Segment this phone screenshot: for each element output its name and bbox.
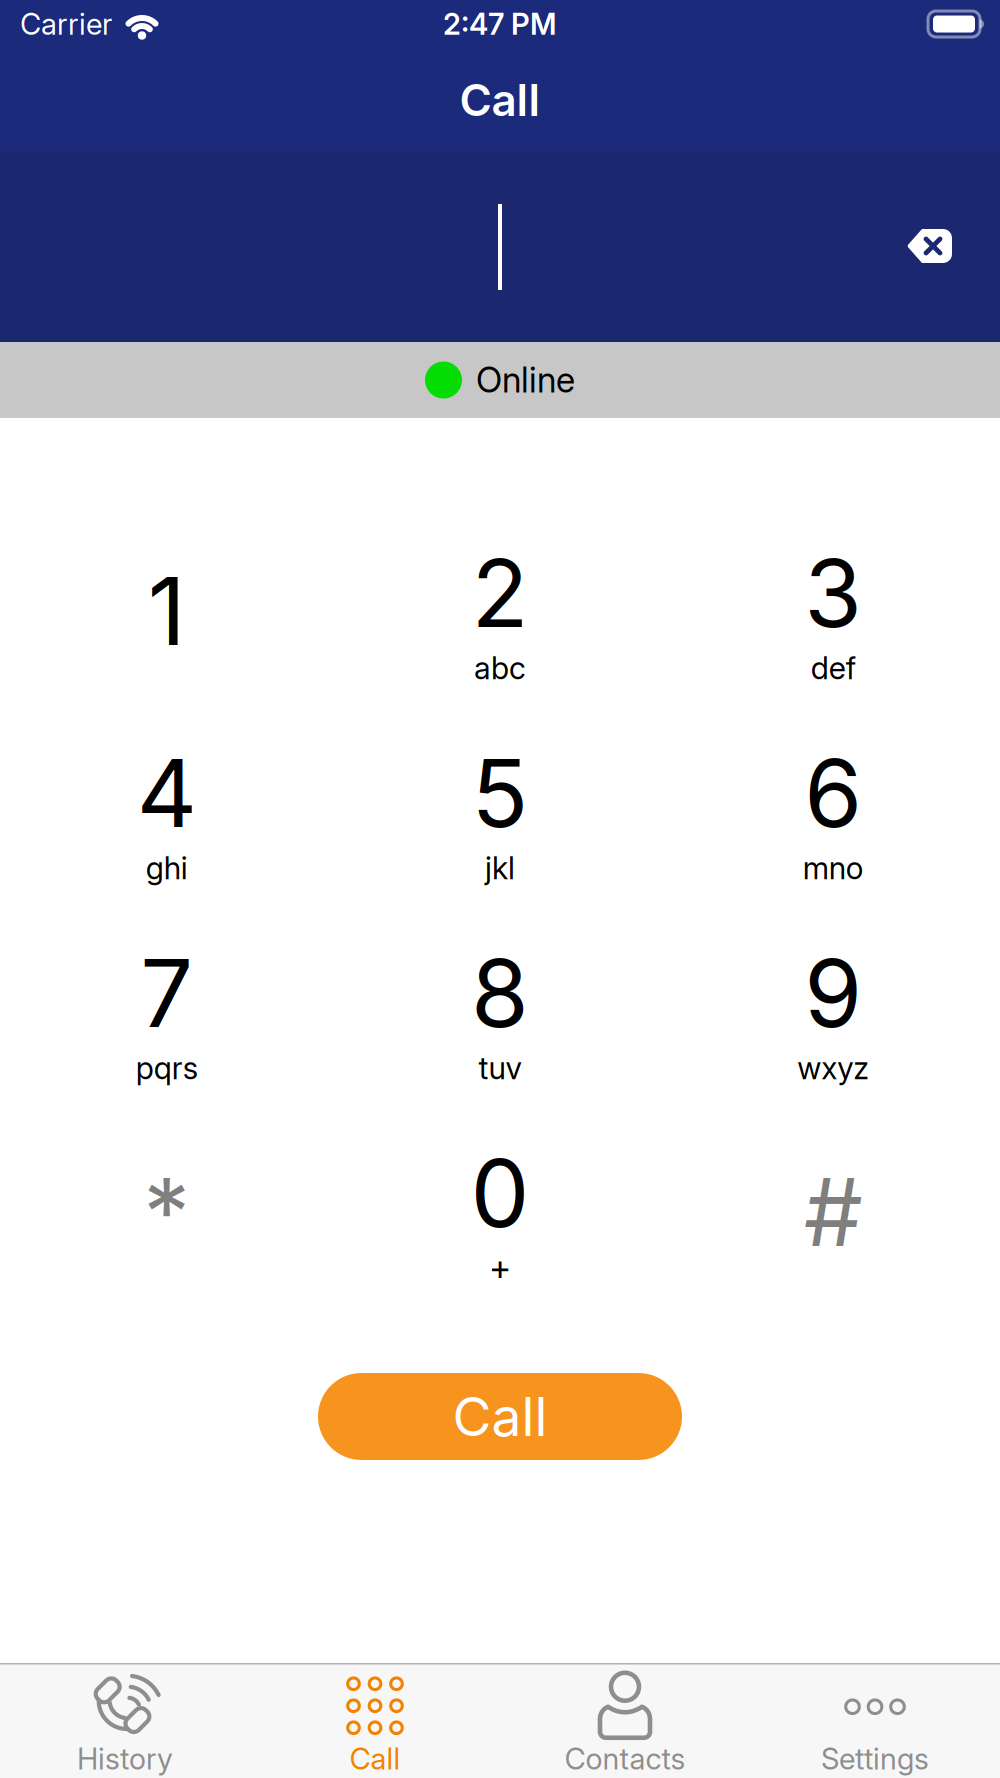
button[interactable]: # — [667, 1117, 1000, 1317]
staticText: wxyz — [797, 1050, 869, 1086]
button[interactable]: 0 — [333, 1117, 667, 1317]
staticText: # — [804, 1157, 863, 1267]
button[interactable]: Call — [318, 1373, 682, 1460]
staticText: 2:47 PM — [443, 7, 557, 41]
button[interactable]: 8 — [333, 917, 667, 1117]
staticText: tuv — [478, 1050, 521, 1086]
button[interactable]: Delete — [906, 226, 952, 266]
staticText: + — [489, 1248, 511, 1288]
staticText: Contacts — [564, 1741, 685, 1776]
staticText: 6 — [804, 738, 862, 848]
staticText: 2 — [471, 538, 528, 648]
staticText: pqrs — [136, 1050, 198, 1086]
button[interactable]: Call — [250, 1665, 500, 1778]
button[interactable]: 1 — [0, 517, 333, 717]
button[interactable]: * — [0, 1117, 333, 1317]
staticText: 5 — [471, 738, 528, 848]
staticText: mno — [803, 850, 864, 886]
staticText: * — [143, 1157, 190, 1267]
staticText: Call — [349, 1741, 400, 1776]
staticText: Settings — [821, 1741, 929, 1776]
staticText: History — [77, 1741, 173, 1776]
staticText: def — [811, 650, 856, 686]
button[interactable]: 2 — [333, 517, 667, 717]
staticText: Carrier — [20, 7, 112, 41]
button[interactable]: 3 — [667, 517, 1000, 717]
button[interactable]: 4 — [0, 717, 333, 917]
staticText: 7 — [140, 938, 193, 1048]
button[interactable]: History — [0, 1665, 250, 1778]
button[interactable]: Settings — [750, 1665, 1000, 1778]
staticText: Call — [459, 74, 540, 126]
button[interactable]: Contacts — [500, 1665, 750, 1778]
staticText: 3 — [804, 538, 862, 648]
button[interactable]: 7 — [0, 917, 333, 1117]
staticText: 9 — [804, 938, 862, 1048]
button[interactable]: 5 — [333, 717, 667, 917]
staticText: jkl — [485, 850, 515, 886]
staticText: 1 — [148, 556, 186, 666]
staticText: 4 — [137, 738, 197, 848]
staticText: 8 — [471, 938, 529, 1048]
staticText: Call — [452, 1385, 547, 1448]
button[interactable]: 9 — [667, 917, 1000, 1117]
staticText: 0 — [470, 1138, 529, 1248]
staticText: abc — [474, 650, 526, 686]
staticText: ghi — [146, 850, 188, 886]
button[interactable]: 6 — [667, 717, 1000, 917]
staticText: Online — [476, 360, 575, 400]
